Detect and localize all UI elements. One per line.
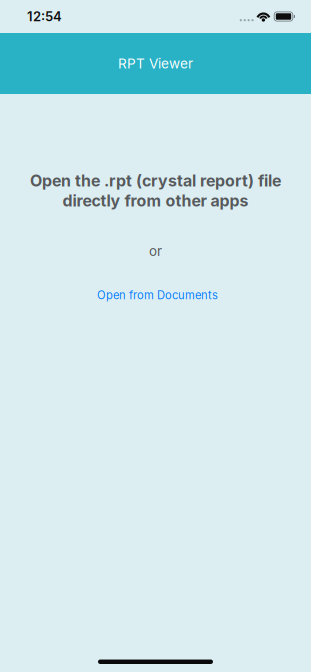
staticText: RPT Viewer — [118, 55, 193, 72]
button[interactable]: Open from Documents — [83, 283, 228, 307]
staticText: 12:54 — [27, 9, 62, 24]
staticText: Open the .rpt (crystal report) file — [30, 171, 281, 190]
staticText: directly from other apps — [62, 191, 248, 210]
staticText: or — [149, 243, 162, 259]
staticText: Open from Documents — [97, 288, 218, 302]
